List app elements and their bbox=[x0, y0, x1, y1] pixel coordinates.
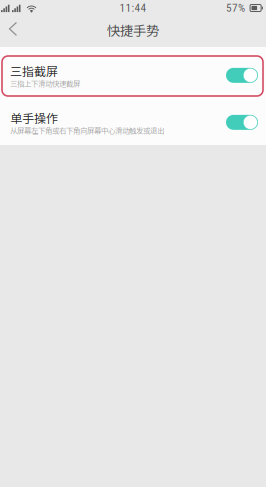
staticText: 快捷手势 bbox=[107, 20, 159, 40]
staticText: 三指截屏 bbox=[10, 62, 58, 79]
staticText: 57% bbox=[226, 1, 245, 15]
staticText: 11:44 bbox=[119, 1, 146, 15]
staticText: 单手操作 bbox=[10, 109, 58, 126]
button[interactable]: 三指截屏 bbox=[0, 47, 266, 99]
button[interactable]: 单手操作 bbox=[0, 99, 266, 145]
button[interactable]: Back bbox=[0, 16, 26, 47]
staticText: 三指上下滑动快速截屏 bbox=[10, 78, 80, 89]
staticText: 从屏幕左下角或右下角向屏幕中心滑动触发或退出 bbox=[10, 125, 164, 136]
